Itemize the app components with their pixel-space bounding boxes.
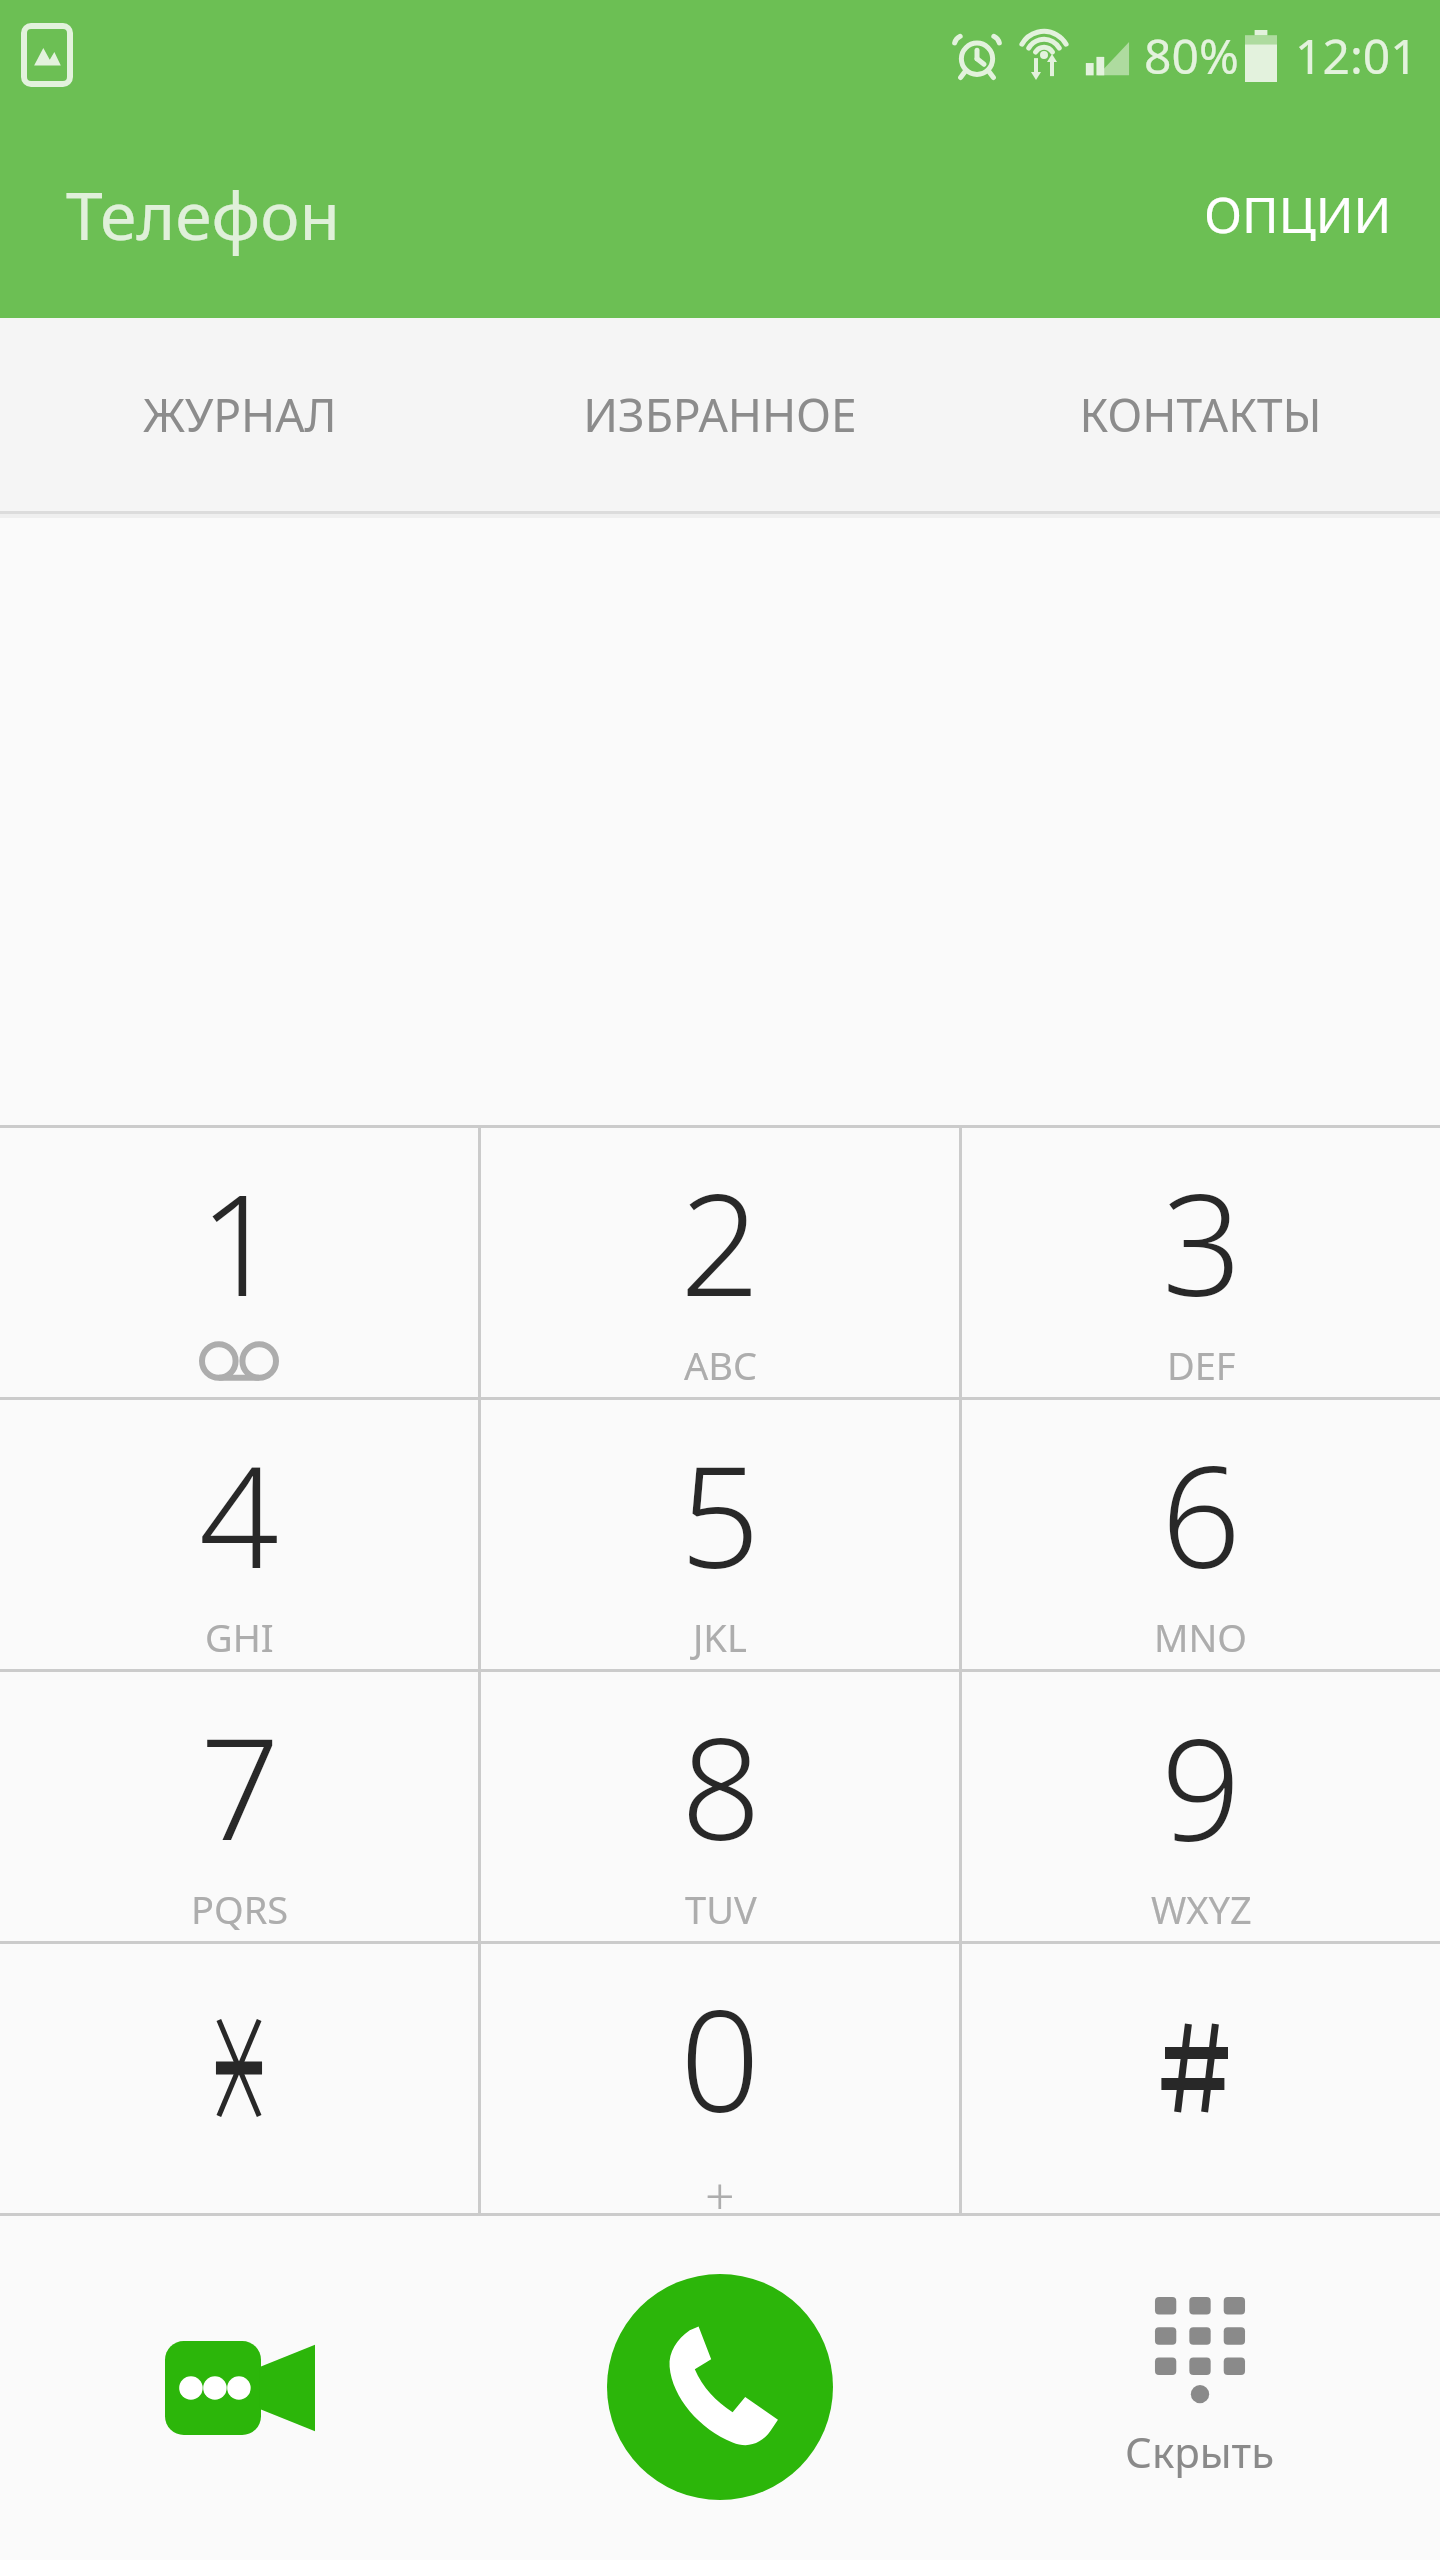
staticText: 1 xyxy=(199,1146,279,1337)
staticText: ОПЦИИ xyxy=(1204,180,1392,248)
button[interactable]: 8 xyxy=(481,1672,959,1941)
staticText: PQRS xyxy=(191,1883,289,1935)
staticText: 6 xyxy=(1161,1418,1241,1609)
staticText: ABC xyxy=(684,1339,757,1391)
staticText: GHI xyxy=(205,1611,274,1663)
button[interactable]: Видеовызов xyxy=(0,2216,480,2560)
button[interactable]: 4 xyxy=(0,1400,478,1669)
staticText: 4 xyxy=(199,1418,279,1609)
button[interactable]: ЖУРНАЛ xyxy=(0,318,480,511)
button[interactable]: 7 xyxy=(0,1672,478,1941)
button[interactable] xyxy=(0,1944,478,2213)
staticText: + xyxy=(705,2159,735,2213)
staticText: 80% xyxy=(1144,23,1239,88)
staticText: ЖУРНАЛ xyxy=(143,383,337,446)
button[interactable]: 5 xyxy=(481,1400,959,1669)
staticText: WXYZ xyxy=(1151,1883,1252,1935)
staticText: 0 xyxy=(680,1962,760,2153)
staticText: 2 xyxy=(680,1146,760,1337)
button[interactable]: 3 xyxy=(962,1128,1440,1397)
staticText: КОНТАКТЫ xyxy=(1079,383,1322,446)
button[interactable]: Вызов xyxy=(607,2274,833,2500)
button[interactable]: 2 xyxy=(481,1128,959,1397)
staticText: 7 xyxy=(200,1690,280,1881)
staticText: 9 xyxy=(1161,1690,1241,1881)
button[interactable] xyxy=(962,1944,1440,2213)
staticText: Скрыть xyxy=(1125,2423,1275,2480)
staticText: DEF xyxy=(1167,1339,1236,1391)
button[interactable]: КОНТАКТЫ xyxy=(960,318,1440,511)
button[interactable]: 0 xyxy=(481,1944,959,2213)
button[interactable]: ИЗБРАННОЕ xyxy=(480,318,960,511)
staticText: 3 xyxy=(1162,1146,1242,1337)
staticText: MNO xyxy=(1154,1611,1248,1663)
button[interactable]: 9 xyxy=(962,1672,1440,1941)
button[interactable]: 1 xyxy=(0,1128,478,1397)
button[interactable]: ОПЦИИ xyxy=(1156,140,1440,288)
staticText: 8 xyxy=(681,1690,761,1881)
staticText: 5 xyxy=(680,1418,760,1609)
button[interactable]: 6 xyxy=(962,1400,1440,1669)
staticText: TUV xyxy=(685,1883,757,1935)
staticText: Телефон xyxy=(66,169,340,259)
staticText: JKL xyxy=(693,1611,747,1663)
staticText: ИЗБРАННОЕ xyxy=(583,383,857,446)
staticText: 12:01 xyxy=(1295,23,1418,88)
button[interactable]: Скрыть xyxy=(960,2216,1440,2560)
